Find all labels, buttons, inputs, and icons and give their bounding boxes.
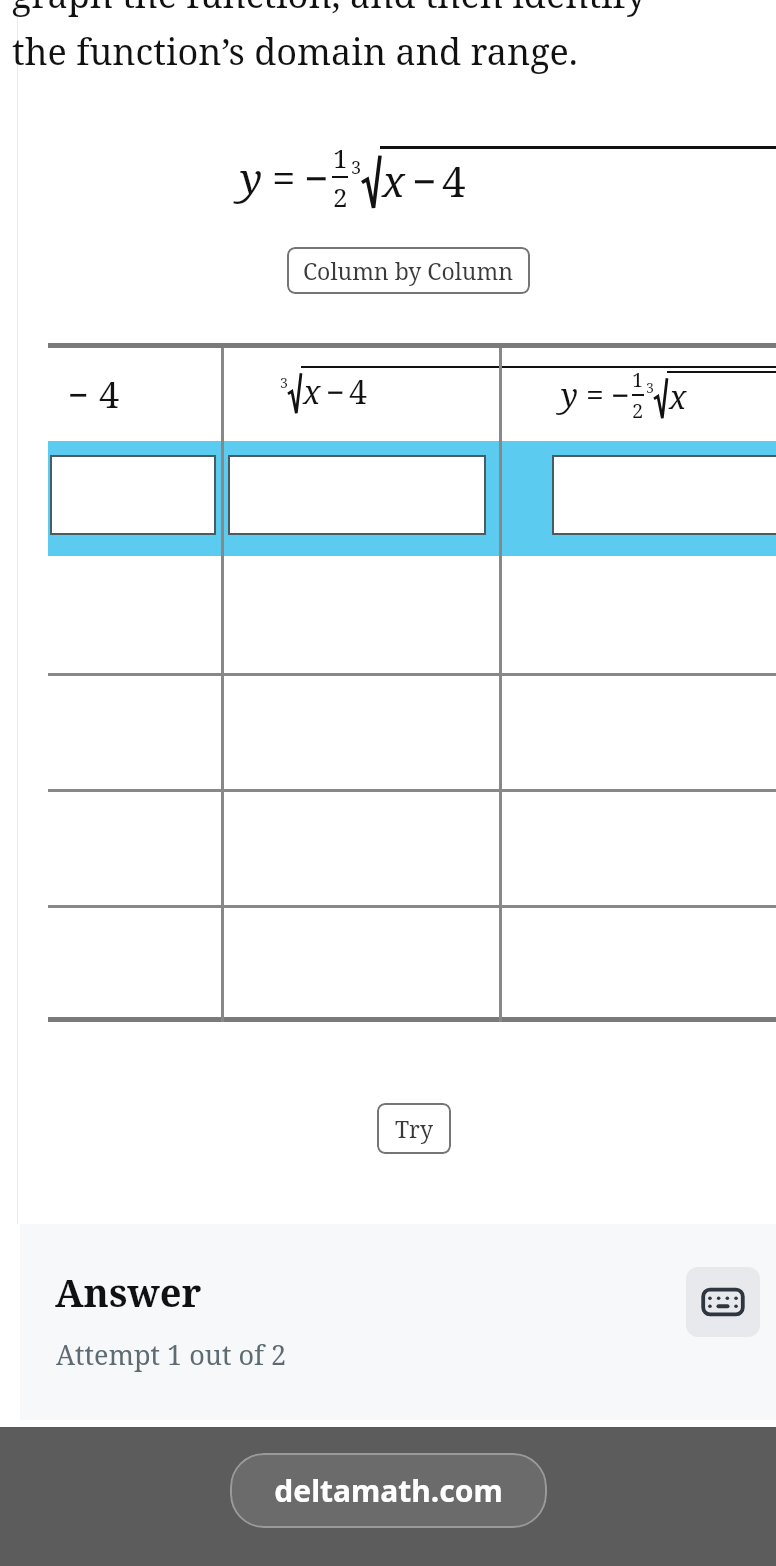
- staticText: Column by Column: [303, 255, 514, 286]
- staticText: 4: [99, 370, 120, 419]
- staticText: =: [586, 373, 604, 417]
- staticText: 1: [632, 366, 644, 393]
- staticText: 4: [442, 152, 466, 209]
- staticText: x: [382, 152, 405, 209]
- staticText: x: [303, 370, 321, 414]
- staticText: −: [304, 149, 329, 206]
- staticText: 3: [280, 373, 288, 392]
- staticText: Attempt 1 out of 2: [56, 1336, 287, 1373]
- staticText: =: [272, 149, 296, 206]
- staticText: −: [412, 152, 437, 209]
- button[interactable]: [50, 455, 216, 535]
- button[interactable]: deltamath.com: [230, 1453, 547, 1528]
- button[interactable]: Column by Column: [287, 247, 530, 294]
- staticText: Answer: [55, 1266, 202, 1318]
- staticText: deltamath.com: [274, 1470, 503, 1511]
- staticText: −: [326, 370, 345, 414]
- staticText: 2: [632, 397, 644, 424]
- staticText: 1: [333, 140, 348, 175]
- button[interactable]: [552, 455, 776, 535]
- staticText: Try: [395, 1113, 433, 1144]
- button[interactable]: [228, 455, 486, 535]
- staticText: 4: [349, 370, 367, 414]
- staticText: 3: [351, 155, 362, 180]
- staticText: y: [561, 373, 578, 417]
- button[interactable]: Open math keyboard: [686, 1267, 760, 1337]
- staticText: x: [669, 375, 687, 419]
- staticText: 3: [646, 378, 654, 397]
- staticText: −: [611, 373, 630, 417]
- staticText: −: [68, 370, 89, 419]
- staticText: y: [240, 149, 263, 206]
- staticText: the function’s domain and range.: [12, 27, 578, 76]
- staticText: 2: [333, 179, 348, 214]
- staticText: graph the function, and then identify: [12, 0, 647, 19]
- button[interactable]: Try: [377, 1103, 451, 1154]
